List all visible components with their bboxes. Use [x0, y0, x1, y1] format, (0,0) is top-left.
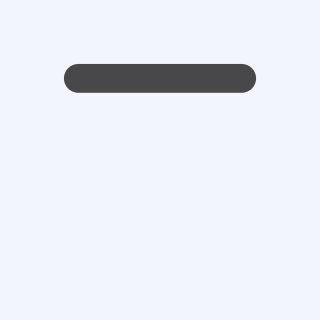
button[interactable]: Continue	[64, 64, 256, 93]
